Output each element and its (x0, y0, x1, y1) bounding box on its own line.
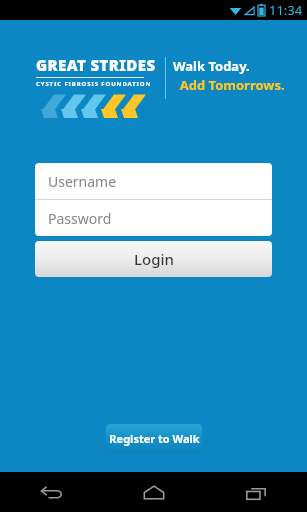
staticText: Username (48, 172, 117, 191)
staticText: Login (134, 249, 174, 269)
staticText: Register to Walk (109, 431, 200, 446)
button[interactable]: Login (35, 241, 272, 277)
button[interactable]: Home (103, 472, 205, 512)
button[interactable]: Recent apps (205, 472, 307, 512)
button[interactable]: Register to Walk (106, 424, 202, 453)
staticText: Add Tomorrows. (173, 76, 285, 94)
staticText: GREAT STRIDES (36, 55, 156, 75)
button[interactable]: Password (35, 200, 272, 236)
button[interactable]: Back (0, 472, 103, 512)
staticText: Password (48, 209, 112, 228)
staticText: Walk Today. (173, 57, 250, 75)
staticText: CYSTIC FIBROSIS FOUNDATION (36, 80, 152, 88)
button[interactable]: Username (35, 163, 272, 199)
staticText: 11:34 (269, 1, 303, 19)
